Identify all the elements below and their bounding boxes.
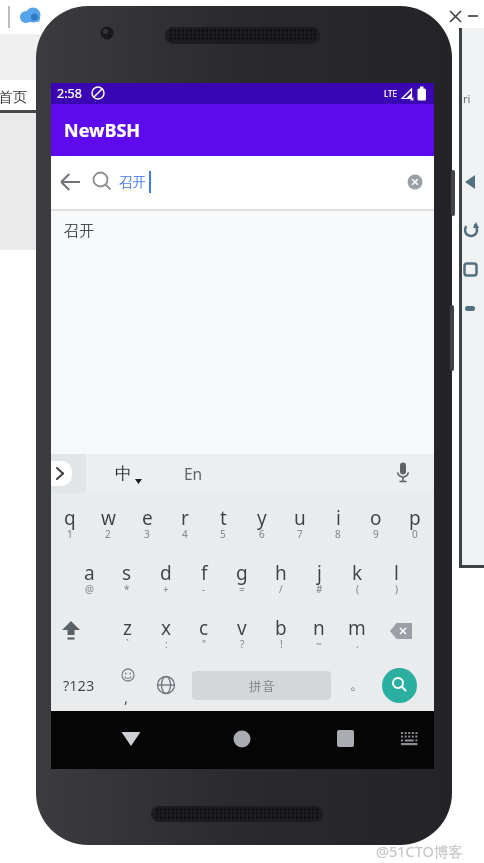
button[interactable] bbox=[51, 104, 434, 157]
button[interactable] bbox=[51, 461, 72, 486]
staticText: j bbox=[317, 560, 322, 586]
staticText: d bbox=[160, 560, 172, 586]
staticText: e bbox=[142, 505, 153, 531]
button[interactable]: 中 bbox=[108, 454, 138, 492]
staticText: 拼音 bbox=[249, 678, 275, 694]
button[interactable]: g bbox=[223, 558, 261, 588]
staticText: En bbox=[184, 463, 203, 484]
staticText: q bbox=[64, 505, 76, 531]
button[interactable]: h bbox=[262, 558, 300, 588]
button[interactable] bbox=[382, 668, 417, 703]
staticText: ? bbox=[240, 637, 245, 651]
button[interactable]: y bbox=[243, 503, 281, 533]
staticText: NewBSH bbox=[64, 118, 141, 143]
button[interactable] bbox=[400, 731, 419, 746]
button[interactable] bbox=[121, 668, 135, 682]
staticText: o bbox=[370, 505, 382, 531]
staticText: 6 bbox=[259, 527, 265, 541]
staticText: c bbox=[199, 615, 209, 641]
staticText: 1 bbox=[67, 527, 73, 541]
staticText: ) bbox=[395, 582, 398, 596]
button[interactable]: f bbox=[185, 558, 223, 588]
staticText: 9 bbox=[373, 527, 379, 541]
staticText: LTE bbox=[384, 88, 397, 99]
staticText: ri bbox=[463, 91, 471, 106]
button[interactable]: r bbox=[166, 503, 204, 533]
staticText: y bbox=[257, 505, 267, 531]
button[interactable]: En bbox=[175, 454, 211, 492]
staticText: x bbox=[161, 615, 172, 641]
button[interactable]: p bbox=[396, 503, 434, 533]
staticText: ( bbox=[356, 582, 359, 596]
staticText: - bbox=[202, 582, 206, 596]
button[interactable] bbox=[233, 730, 251, 748]
staticText: 3 bbox=[144, 527, 150, 541]
staticText: a bbox=[84, 560, 95, 586]
button[interactable]: s bbox=[108, 558, 146, 588]
staticText: ?123 bbox=[63, 675, 95, 695]
staticText: k bbox=[352, 560, 363, 586]
button[interactable]: o bbox=[357, 503, 395, 533]
staticText: z bbox=[123, 615, 132, 641]
button[interactable]: t bbox=[204, 503, 242, 533]
staticText: + bbox=[163, 582, 169, 596]
button[interactable]: b bbox=[262, 613, 300, 643]
staticText: 召开 bbox=[119, 174, 146, 191]
staticText: g bbox=[236, 560, 248, 586]
button[interactable]: z bbox=[108, 613, 146, 643]
staticText: h bbox=[275, 560, 287, 586]
button[interactable]: 拼音 bbox=[192, 671, 331, 700]
button[interactable] bbox=[60, 621, 82, 641]
staticText: ` bbox=[126, 637, 129, 651]
button[interactable] bbox=[390, 623, 414, 640]
staticText: 2:58 bbox=[57, 85, 82, 102]
button[interactable]: c bbox=[185, 613, 223, 643]
button[interactable]: m bbox=[338, 613, 376, 643]
staticText: ~ bbox=[316, 637, 322, 651]
staticText: 中 bbox=[115, 463, 132, 484]
staticText: n bbox=[313, 615, 325, 641]
button[interactable]: 召开 bbox=[64, 219, 124, 243]
staticText: u bbox=[294, 505, 306, 531]
staticText: ! bbox=[280, 637, 283, 651]
staticText: f bbox=[201, 560, 208, 586]
staticText: @51CTO博客 bbox=[376, 841, 463, 861]
staticText: w bbox=[101, 505, 116, 531]
staticText: # bbox=[316, 582, 323, 596]
button[interactable] bbox=[449, 10, 462, 23]
staticText: , bbox=[124, 687, 129, 707]
button[interactable]: e bbox=[128, 503, 166, 533]
button[interactable] bbox=[156, 675, 176, 695]
button[interactable]: x bbox=[147, 613, 185, 643]
button[interactable]: w bbox=[89, 503, 127, 533]
button[interactable]: q bbox=[51, 503, 89, 533]
button[interactable]: n bbox=[300, 613, 338, 643]
button[interactable]: u bbox=[281, 503, 319, 533]
staticText: @ bbox=[85, 582, 94, 596]
button[interactable]: ?123 bbox=[57, 669, 101, 701]
button[interactable] bbox=[59, 171, 82, 193]
staticText: i bbox=[336, 505, 341, 531]
button[interactable]: l bbox=[377, 558, 415, 588]
button[interactable]: v bbox=[223, 613, 261, 643]
staticText: b bbox=[275, 615, 287, 641]
staticText: / bbox=[279, 582, 283, 596]
button[interactable] bbox=[407, 174, 423, 190]
button[interactable]: i bbox=[319, 503, 357, 533]
button[interactable]: a bbox=[70, 558, 108, 588]
button[interactable]: d bbox=[147, 558, 185, 588]
staticText: . bbox=[356, 637, 359, 651]
staticText: 8 bbox=[335, 527, 341, 541]
staticText: t bbox=[220, 505, 227, 531]
button[interactable] bbox=[395, 462, 411, 485]
staticText: p bbox=[409, 505, 421, 531]
button[interactable]: k bbox=[338, 558, 376, 588]
staticText: = bbox=[239, 582, 245, 596]
button[interactable]: 。 bbox=[347, 673, 367, 697]
button[interactable]: j bbox=[300, 558, 338, 588]
button[interactable] bbox=[337, 730, 354, 747]
staticText: r bbox=[181, 505, 189, 531]
button[interactable] bbox=[121, 732, 141, 747]
staticText: 。 bbox=[350, 676, 364, 694]
staticText: 7 bbox=[297, 527, 303, 541]
